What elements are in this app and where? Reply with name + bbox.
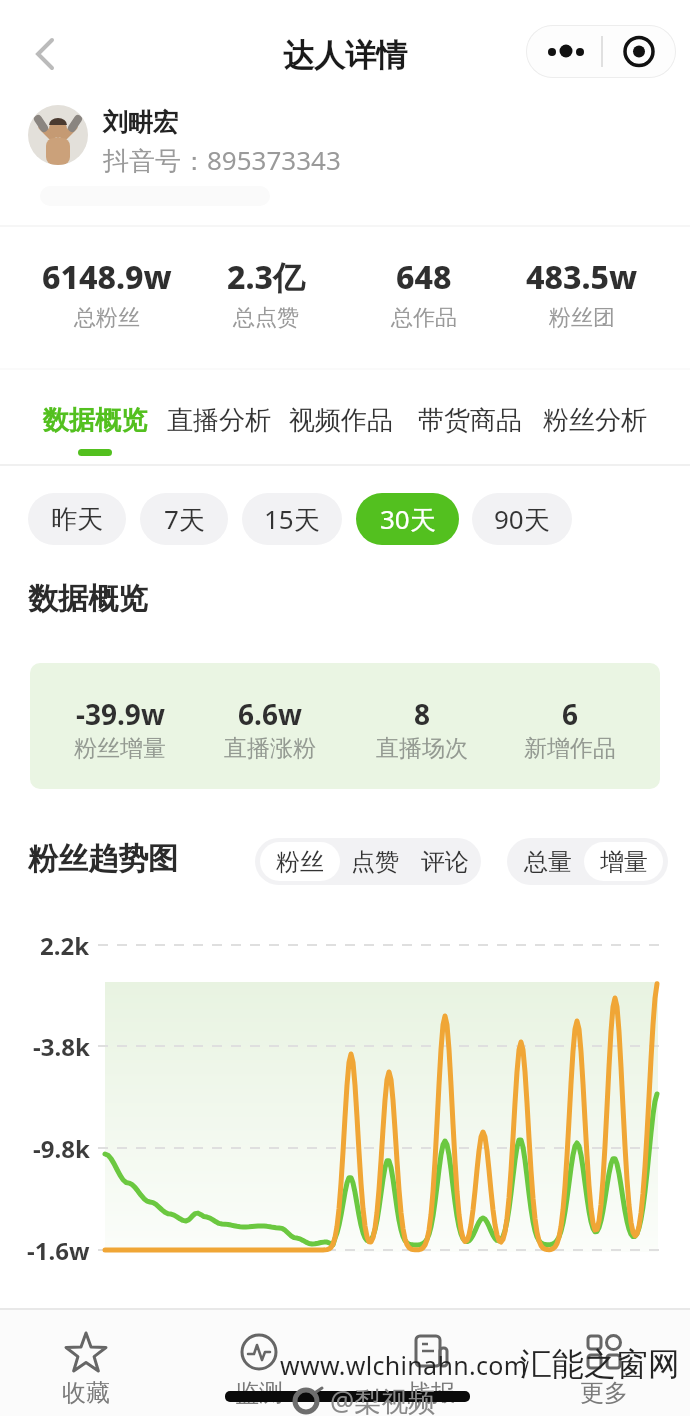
staticText: 直播涨粉 bbox=[224, 734, 316, 763]
staticText: 汇能之窗网 bbox=[520, 1344, 680, 1384]
staticText: www.wlchinahn.com bbox=[280, 1348, 528, 1382]
button[interactable]: 90天 bbox=[472, 493, 572, 545]
button[interactable] bbox=[601, 25, 676, 78]
staticText: 达人详情 bbox=[283, 36, 407, 75]
staticText: 直播场次 bbox=[376, 734, 468, 763]
staticText: 数据概览 bbox=[43, 404, 147, 437]
button[interactable]: 昨天 bbox=[28, 493, 126, 545]
staticText: 评论 bbox=[421, 847, 469, 877]
staticText: 30天 bbox=[380, 501, 436, 537]
staticText: 总量 bbox=[524, 847, 572, 877]
button[interactable]: 评论 bbox=[410, 842, 480, 881]
staticText: 粉丝分析 bbox=[543, 404, 647, 437]
button[interactable]: 直播分析 bbox=[157, 398, 281, 442]
button[interactable]: 数据概览 bbox=[33, 398, 157, 442]
staticText: 收藏 bbox=[62, 1378, 110, 1408]
button[interactable]: 点赞 bbox=[340, 842, 410, 881]
staticText: 昨天 bbox=[51, 503, 103, 536]
staticText: 2.3亿 bbox=[227, 255, 306, 299]
button[interactable] bbox=[199, 1316, 319, 1416]
staticText: 总作品 bbox=[391, 304, 457, 332]
button[interactable]: 总量 bbox=[512, 842, 584, 881]
staticText: 15天 bbox=[264, 501, 320, 537]
staticText: 6 bbox=[562, 695, 579, 733]
staticText: 粉丝团 bbox=[549, 304, 615, 332]
staticText: -1.6w bbox=[27, 1234, 90, 1267]
staticText: 粉丝增量 bbox=[74, 734, 166, 763]
button[interactable]: 粉丝 bbox=[260, 842, 340, 881]
staticText: 刘畊宏 bbox=[103, 107, 178, 138]
staticText: 粉丝 bbox=[276, 847, 324, 877]
staticText: 总粉丝 bbox=[74, 304, 140, 332]
staticText: 监测 bbox=[235, 1378, 283, 1408]
staticText: 粉丝趋势图 bbox=[28, 840, 178, 878]
staticText: -9.8k bbox=[33, 1132, 90, 1165]
staticText: @梨视频 bbox=[330, 1382, 436, 1416]
button[interactable]: 粉丝分析 bbox=[533, 398, 657, 442]
staticText: 战报 bbox=[407, 1378, 455, 1408]
button[interactable] bbox=[544, 1316, 664, 1416]
staticText: -3.8k bbox=[33, 1030, 90, 1063]
button[interactable] bbox=[30, 38, 60, 70]
staticText: 更多 bbox=[580, 1378, 628, 1408]
staticText: 483.5w bbox=[526, 255, 638, 299]
staticText: 2.2k bbox=[40, 929, 90, 962]
button[interactable] bbox=[526, 25, 601, 78]
staticText: 数据概览 bbox=[28, 580, 148, 618]
staticText: 增量 bbox=[600, 847, 648, 877]
staticText: 6148.9w bbox=[42, 255, 172, 299]
button[interactable] bbox=[371, 1316, 491, 1416]
staticText: 648 bbox=[396, 255, 452, 299]
staticText: 直播分析 bbox=[167, 404, 271, 437]
staticText: 7天 bbox=[164, 501, 205, 537]
staticText: 抖音号：895373343 bbox=[103, 142, 341, 178]
button[interactable]: 15天 bbox=[242, 493, 342, 545]
button[interactable]: 视频作品 bbox=[279, 398, 403, 442]
button[interactable] bbox=[26, 1316, 146, 1416]
staticText: 90天 bbox=[494, 501, 550, 537]
staticText: 总点赞 bbox=[233, 304, 299, 332]
staticText: -39.9w bbox=[76, 695, 165, 733]
staticText: 点赞 bbox=[351, 847, 399, 877]
staticText: 6.6w bbox=[238, 695, 302, 733]
staticText: 视频作品 bbox=[289, 404, 393, 437]
button[interactable]: 带货商品 bbox=[408, 398, 532, 442]
staticText: 新增作品 bbox=[524, 734, 616, 763]
staticText: 带货商品 bbox=[418, 404, 522, 437]
button[interactable] bbox=[28, 105, 88, 165]
button[interactable]: 30天 bbox=[356, 493, 459, 545]
button[interactable]: 增量 bbox=[584, 842, 663, 881]
button[interactable]: 7天 bbox=[140, 493, 228, 545]
staticText: 8 bbox=[414, 695, 431, 733]
